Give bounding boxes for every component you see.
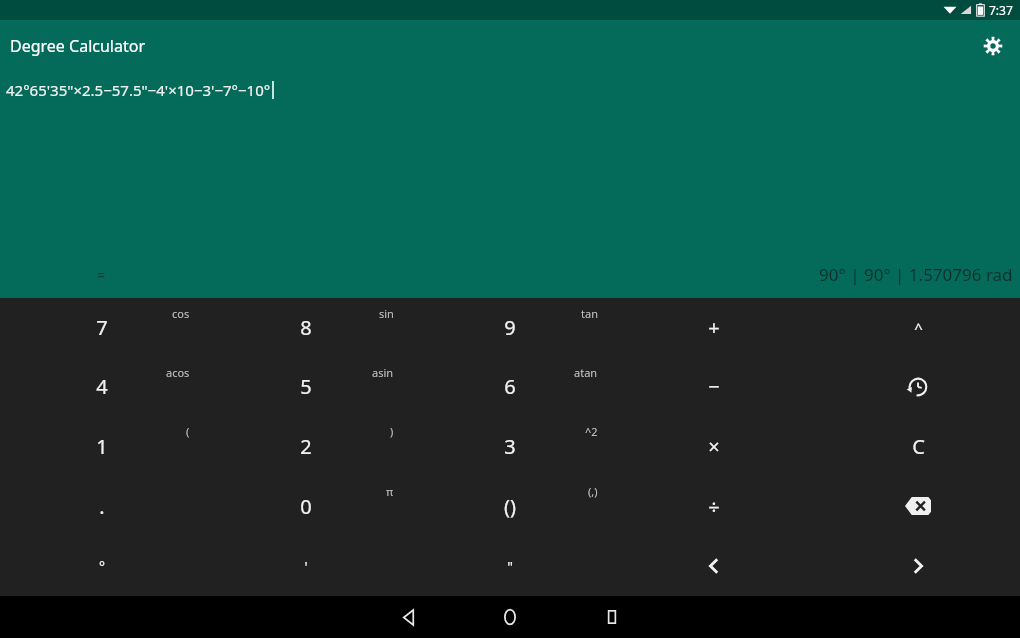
staticText: asin [372, 365, 394, 380]
staticText: 9 [504, 314, 516, 341]
button[interactable]: ^ [816, 298, 1020, 357]
staticText: − [708, 373, 720, 400]
staticText: 2 [300, 433, 312, 460]
button[interactable]: acos [0, 357, 204, 416]
staticText: 5 [300, 373, 312, 400]
staticText: 42°65'35"×2.5−57.5"−4'×10−3'−7°−10° [6, 80, 271, 100]
staticText: π [386, 484, 394, 499]
button[interactable]: sin [204, 298, 408, 357]
button[interactable]: Backspace [816, 476, 1020, 536]
button[interactable]: ÷ [612, 476, 816, 536]
staticText: = [97, 265, 106, 284]
staticText: ^ [914, 318, 923, 338]
staticText: 4 [96, 373, 108, 400]
button[interactable]: + [612, 298, 816, 357]
staticText: ( [186, 424, 190, 439]
button[interactable]: Settings [976, 29, 1010, 63]
button[interactable]: cos [0, 298, 204, 357]
staticText: " [507, 557, 513, 576]
staticText: × [708, 433, 720, 460]
staticText: 7:37 [989, 2, 1013, 18]
button[interactable]: tan [408, 298, 612, 357]
button[interactable]: asin [204, 357, 408, 416]
button[interactable]: ( [0, 416, 204, 476]
button[interactable]: − [612, 357, 816, 416]
button[interactable]: ) [204, 416, 408, 476]
staticText: 1 [96, 433, 108, 460]
staticText: sin [379, 306, 394, 321]
staticText: 8 [300, 314, 312, 341]
staticText: ' [304, 557, 308, 576]
staticText: Degree Calculator [10, 35, 145, 57]
staticText: . [99, 493, 105, 520]
button[interactable]: atan [408, 357, 612, 416]
staticText: 7 [96, 314, 108, 341]
staticText: atan [574, 365, 598, 380]
button[interactable]: Move cursor left [612, 536, 816, 596]
button[interactable]: ^2 [408, 416, 612, 476]
button[interactable]: Home [480, 596, 540, 638]
button[interactable]: Recent apps [582, 596, 642, 638]
button[interactable]: " [408, 536, 612, 596]
button[interactable]: ° [0, 536, 204, 596]
staticText: (,) [588, 484, 598, 499]
staticText: cos [172, 306, 190, 321]
staticText: ^2 [585, 424, 598, 439]
button[interactable]: Move cursor right [816, 536, 1020, 596]
button[interactable]: × [612, 416, 816, 476]
button[interactable]: History [816, 357, 1020, 416]
staticText: 6 [504, 373, 516, 400]
staticText: 0 [300, 493, 312, 520]
button[interactable]: C [816, 416, 1020, 476]
button[interactable]: (,) [408, 476, 612, 536]
staticText: () [504, 493, 516, 520]
button[interactable]: . [0, 476, 204, 536]
staticText: tan [581, 306, 598, 321]
staticText: C [912, 433, 925, 460]
button[interactable]: Back [378, 596, 438, 638]
button[interactable]: ' [204, 536, 408, 596]
staticText: ° [99, 557, 105, 576]
staticText: 3 [504, 433, 516, 460]
button[interactable]: π [204, 476, 408, 536]
staticText: acos [166, 365, 190, 380]
staticText: 90° | 90° | 1.570796 rad [819, 263, 1013, 286]
staticText: ) [390, 424, 394, 439]
staticText: + [708, 314, 720, 341]
staticText: ÷ [708, 493, 720, 520]
